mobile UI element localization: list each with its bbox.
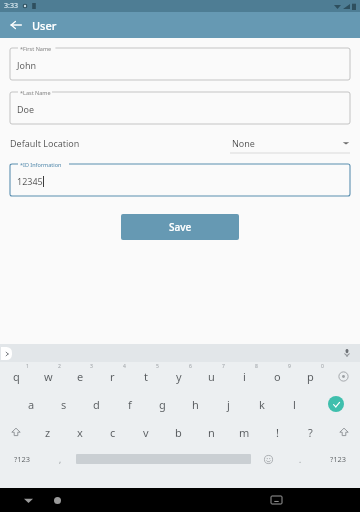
staticText: q <box>13 369 20 384</box>
staticText: x <box>77 425 83 440</box>
staticText: *ID Information <box>20 161 62 168</box>
button[interactable]: l <box>278 390 311 418</box>
staticText: p <box>307 369 314 384</box>
button[interactable]: Back <box>4 13 28 37</box>
button[interactable]: Shift <box>0 418 32 446</box>
staticText: 6 <box>189 363 192 370</box>
button[interactable]: q <box>0 362 32 390</box>
button[interactable]: *ID Information <box>10 160 350 196</box>
button[interactable]: ! <box>261 418 294 446</box>
button[interactable]: Emoji <box>251 446 285 472</box>
staticText: 2 <box>58 363 61 370</box>
staticText: w <box>44 369 53 384</box>
staticText: 7 <box>222 363 225 370</box>
staticText: 12345 <box>17 175 43 187</box>
button[interactable]: a <box>15 390 47 418</box>
button[interactable]: j <box>212 390 245 418</box>
staticText: u <box>208 369 215 384</box>
staticText: 0 <box>321 363 324 370</box>
staticText: 8 <box>255 363 258 370</box>
button[interactable]: v <box>129 418 162 446</box>
button[interactable]: p <box>294 362 327 390</box>
button[interactable]: ?123 <box>0 446 45 472</box>
staticText: k <box>259 397 265 412</box>
button[interactable]: *First Name <box>10 44 350 80</box>
button[interactable]: g <box>146 390 179 418</box>
button[interactable]: n <box>195 418 228 446</box>
staticText: c <box>110 425 116 440</box>
button[interactable]: z <box>32 418 64 446</box>
staticText: ?123 <box>14 454 31 464</box>
button[interactable]: e <box>64 362 96 390</box>
staticText: ? <box>308 425 313 440</box>
button[interactable]: None <box>230 132 350 154</box>
staticText: m <box>239 425 250 440</box>
staticText: *Last Name <box>20 89 51 96</box>
staticText: g <box>159 397 166 412</box>
button[interactable]: ?123 <box>316 446 360 472</box>
staticText: b <box>175 425 182 440</box>
button[interactable]: x <box>64 418 96 446</box>
staticText: f <box>128 397 132 412</box>
button[interactable]: Enter <box>311 390 360 418</box>
staticText: ! <box>276 425 279 440</box>
staticText: z <box>45 425 51 440</box>
staticText: r <box>110 369 115 384</box>
staticText: Doe <box>17 103 35 115</box>
staticText: 3 <box>90 363 93 370</box>
staticText: v <box>143 425 149 440</box>
button[interactable]: f <box>113 390 146 418</box>
button[interactable]: w <box>32 362 64 390</box>
staticText: t <box>144 369 148 384</box>
button[interactable]: b <box>162 418 195 446</box>
button[interactable]: o <box>261 362 294 390</box>
staticText: Save <box>169 220 192 234</box>
staticText: j <box>227 397 230 412</box>
button[interactable]: s <box>47 390 80 418</box>
staticText: 3:33 <box>4 1 18 11</box>
button[interactable]: k <box>245 390 278 418</box>
button[interactable]: ? <box>294 418 327 446</box>
staticText: 9 <box>288 363 291 370</box>
button[interactable]: Backspace <box>327 362 360 390</box>
staticText: l <box>293 397 296 412</box>
staticText: 4 <box>123 363 126 370</box>
button[interactable]: Expand suggestions <box>1 347 12 360</box>
button[interactable]: r <box>96 362 129 390</box>
staticText: *First Name <box>20 45 52 52</box>
staticText: s <box>61 397 67 412</box>
staticText: d <box>93 397 100 412</box>
staticText: o <box>274 369 281 384</box>
button[interactable]: Voice input <box>341 347 353 359</box>
button[interactable]: t <box>129 362 162 390</box>
staticText: n <box>208 425 215 440</box>
button[interactable]: h <box>179 390 212 418</box>
staticText: a <box>28 397 35 412</box>
staticText: . <box>299 454 302 465</box>
staticText: h <box>192 397 199 412</box>
button[interactable]: d <box>80 390 113 418</box>
button[interactable]: Shift <box>327 418 360 446</box>
button[interactable]: c <box>96 418 129 446</box>
staticText: 1 <box>26 363 29 370</box>
button[interactable]: u <box>195 362 228 390</box>
button[interactable]: i <box>228 362 261 390</box>
staticText: ?123 <box>330 454 347 464</box>
button[interactable]: Home <box>47 490 67 510</box>
staticText: User <box>32 18 57 33</box>
staticText: John <box>17 59 37 71</box>
staticText: None <box>232 137 255 149</box>
staticText: e <box>77 369 84 384</box>
button[interactable]: Keyboard <box>266 490 286 510</box>
staticText: , <box>59 454 62 465</box>
staticText: y <box>176 369 182 384</box>
button[interactable]: y <box>162 362 195 390</box>
button[interactable]: *Last Name <box>10 88 350 124</box>
button[interactable]: Back <box>18 490 38 510</box>
staticText: Default Location <box>10 137 80 149</box>
button[interactable]: m <box>228 418 261 446</box>
button[interactable]: Save <box>121 214 239 240</box>
